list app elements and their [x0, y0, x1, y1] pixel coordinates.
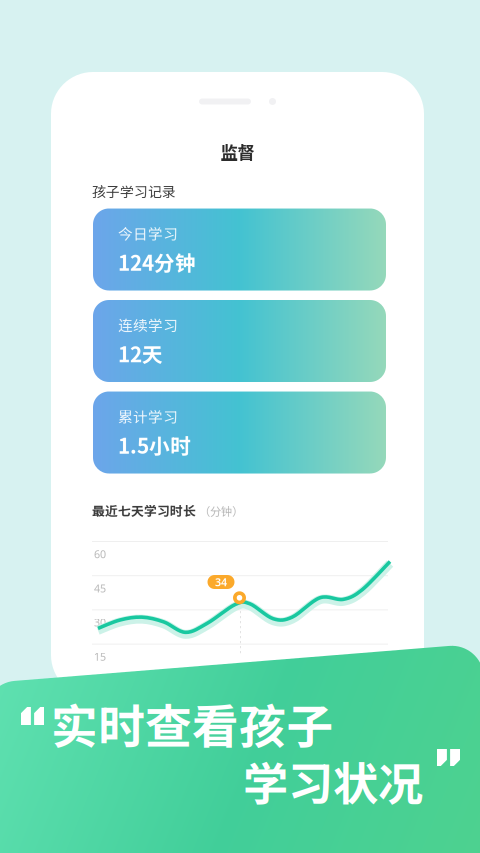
staticText: 最近七天学习时长: [92, 501, 196, 519]
staticText: 学习状况: [243, 748, 423, 814]
staticText: 60: [94, 547, 106, 561]
staticText: 124分钟: [118, 247, 196, 277]
button[interactable]: 今日学习: [93, 208, 386, 290]
button[interactable]: 累计学习: [93, 391, 386, 473]
staticText: （分钟）: [199, 503, 243, 519]
staticText: 15: [94, 650, 106, 664]
staticText: 1.5小时: [118, 430, 191, 460]
staticText: 连续学习: [118, 314, 178, 335]
staticText: 实时查看孩子: [51, 689, 333, 757]
staticText: 累计学习: [118, 405, 178, 427]
staticText: 30: [94, 615, 106, 630]
staticText: 45: [94, 581, 106, 595]
staticText: 34: [215, 575, 227, 589]
staticText: 孩子学习记录: [92, 181, 176, 201]
staticText: 今日学习: [118, 222, 178, 244]
staticText: 12天: [118, 338, 163, 368]
button[interactable]: 连续学习: [93, 300, 386, 382]
staticText: 监督: [220, 139, 254, 164]
